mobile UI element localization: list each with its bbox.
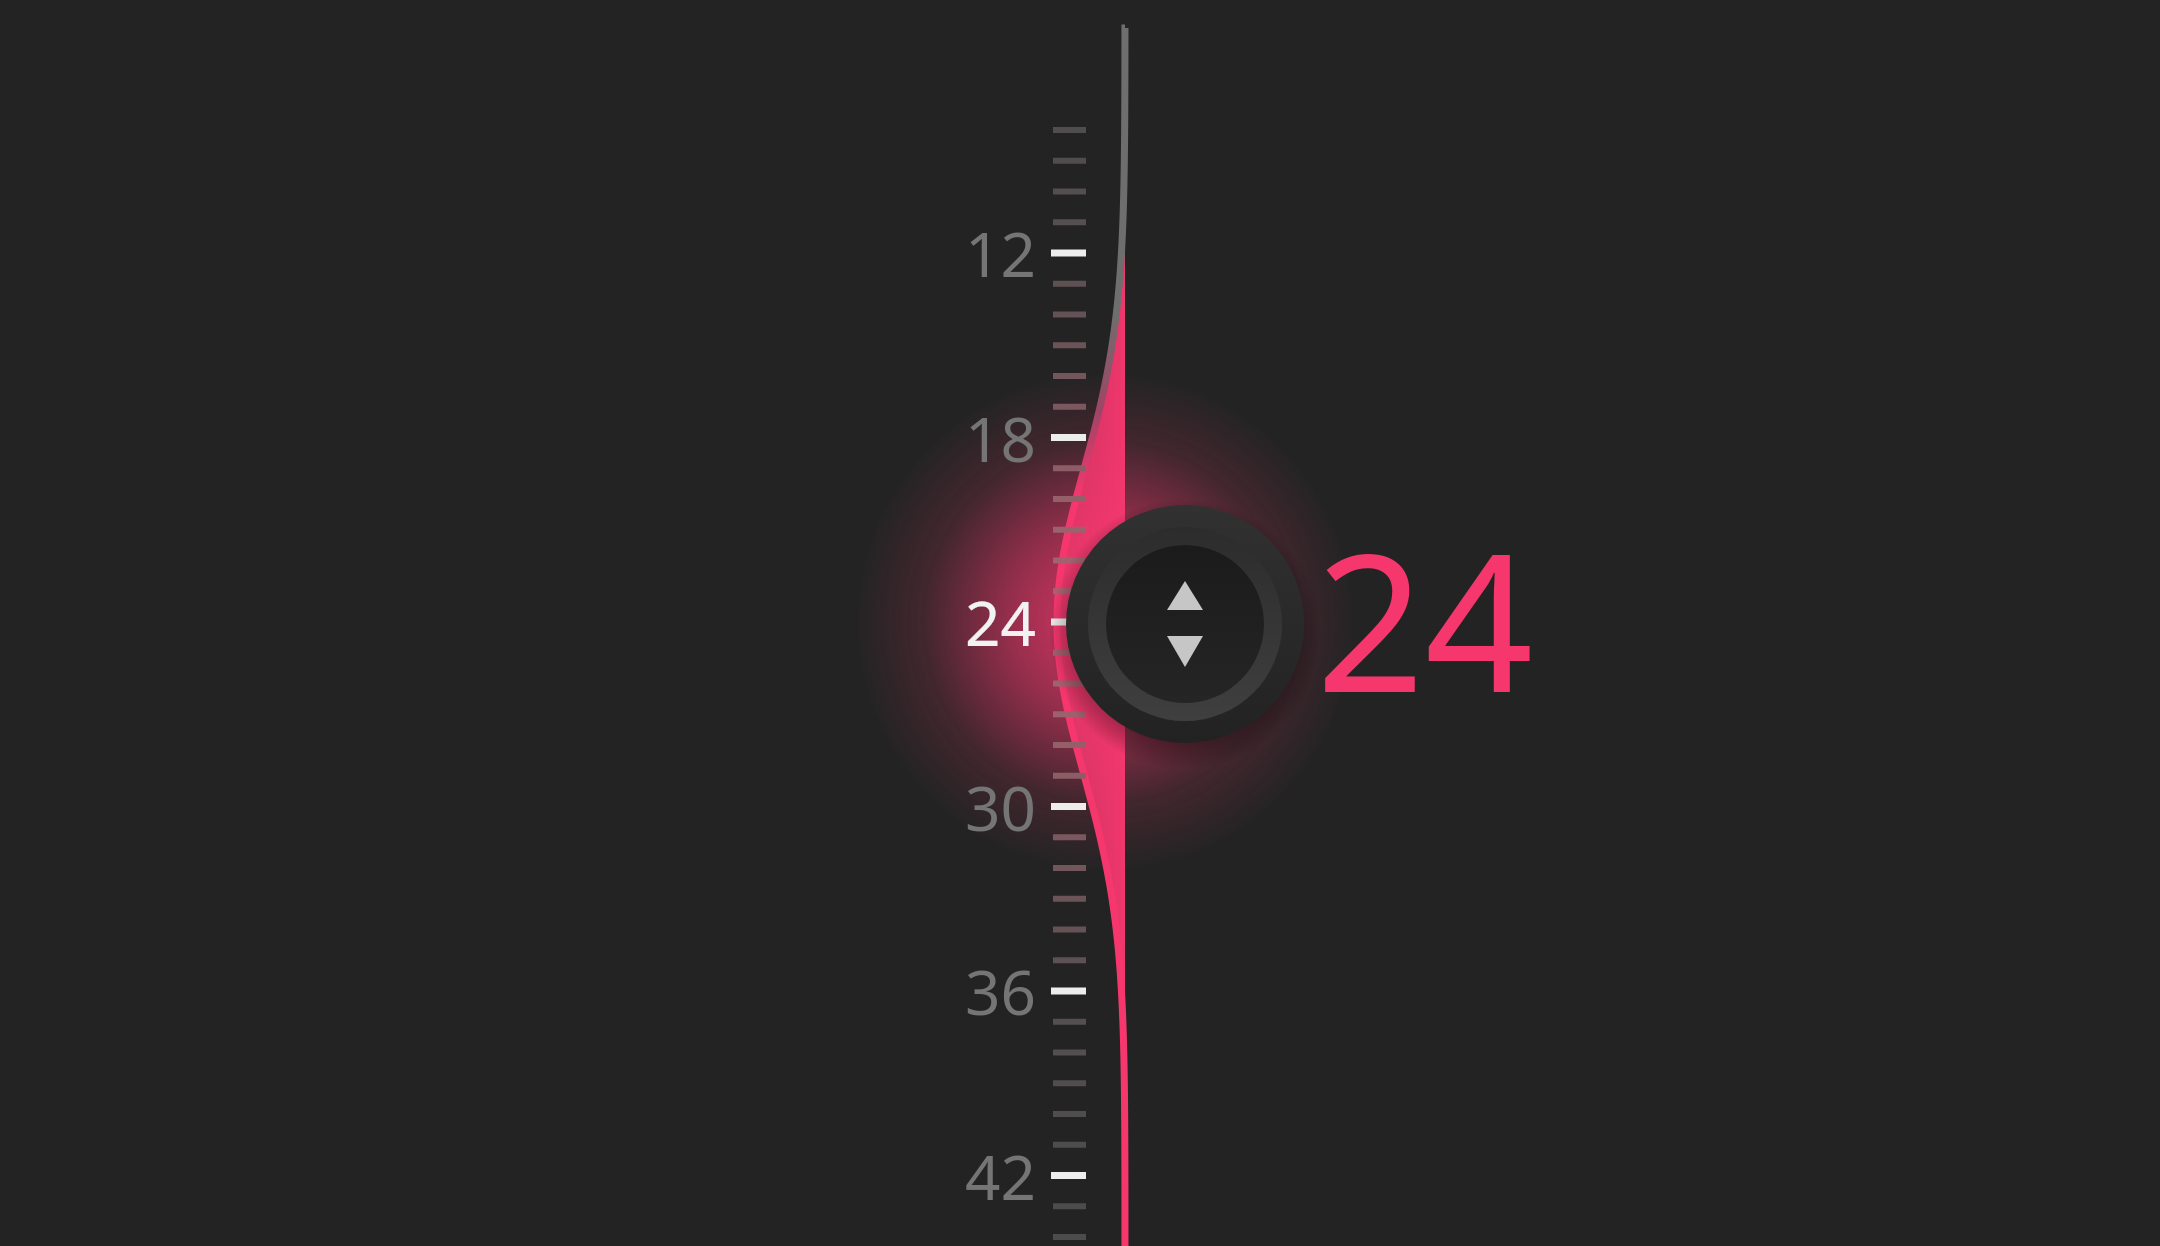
button[interactable]: Adjust value [1065, 504, 1305, 744]
